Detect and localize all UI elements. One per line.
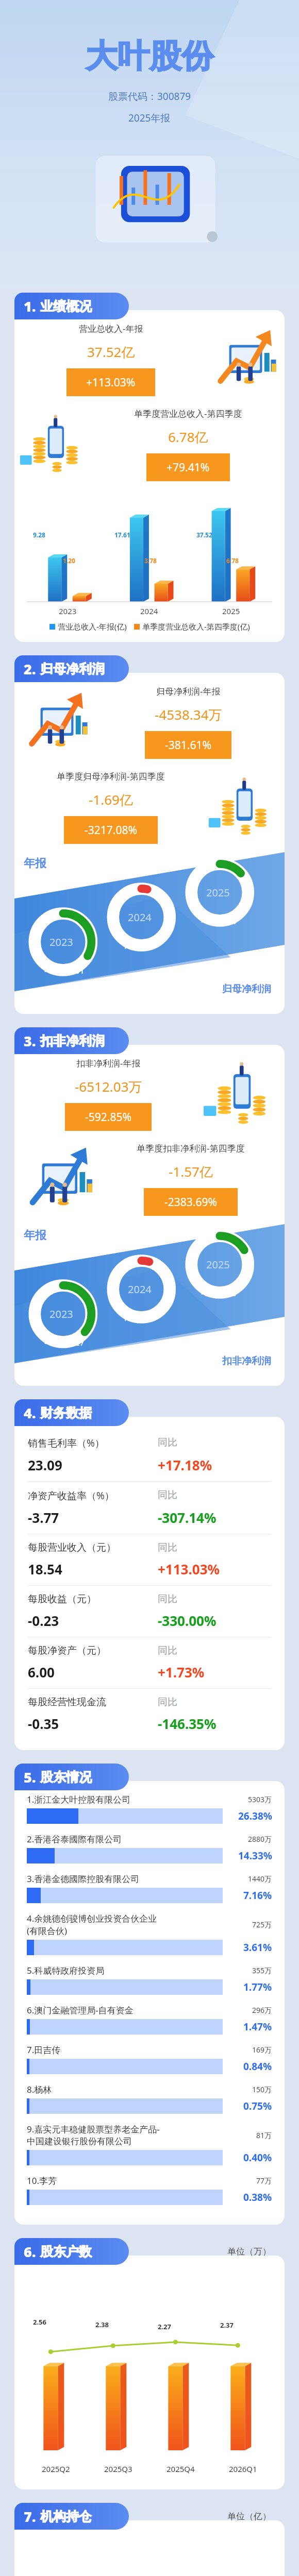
staticText: 7. <box>24 2507 36 2526</box>
staticText: 同比 <box>158 1436 177 1449</box>
staticText: 355万 <box>252 1965 272 1975</box>
button[interactable]: 4.余姚德创骏博创业投资合伙企业 (有限合伙) <box>14 1912 285 1964</box>
staticText: 1.77% <box>243 1980 272 1994</box>
staticText: -16170.27 <box>44 1336 85 1348</box>
staticText: 单位（万） <box>227 2246 271 2257</box>
staticText: 1. <box>24 297 36 316</box>
button[interactable]: 2.香港谷泰國際有限公司 <box>14 1833 285 1873</box>
staticText: 2023 <box>49 1307 73 1321</box>
staticText: 1611.52 <box>123 940 155 952</box>
staticText: 扣非净利润-年报 <box>76 1057 141 1069</box>
staticText: 归母净利润-年报 <box>156 685 221 697</box>
staticText: 150万 <box>252 2084 272 2094</box>
button[interactable]: 3.香港金德國際控股有限公司 <box>14 1873 285 1912</box>
button[interactable]: 3. <box>14 1027 129 1054</box>
button[interactable]: 2. <box>14 655 129 682</box>
staticText: +79.41% <box>167 460 210 475</box>
staticText: 5. <box>24 1768 36 1787</box>
staticText: 1.20 <box>63 556 75 565</box>
staticText: 同比 <box>158 1593 177 1605</box>
staticText: 3.香港金德國際控股有限公司 <box>27 1873 140 1885</box>
staticText: 2026Q1 <box>229 2464 257 2474</box>
button[interactable]: +79.41% <box>146 453 230 481</box>
staticText: 营业总收入-年报 <box>79 323 143 334</box>
staticText: 77万 <box>256 2176 272 2185</box>
button[interactable]: 9.嘉实元丰稳健股票型养老金产品- 中国建设银行股份有限公司 <box>14 2123 285 2175</box>
staticText: +17.18% <box>158 1456 212 1474</box>
button[interactable]: 5. <box>14 1764 129 1790</box>
staticText: 8.杨林 <box>27 2083 52 2095</box>
staticText: 2880万 <box>248 1834 272 1844</box>
staticText: 同比 <box>158 1489 177 1501</box>
staticText: 净资产收益率（%） <box>28 1489 114 1502</box>
staticText: 4.余姚德创骏博创业投资合伙企业 (有限合伙) <box>27 1912 157 1937</box>
staticText: 单季度营业总收入-第四季度 <box>134 408 242 419</box>
button[interactable]: 销售毛利率（%） <box>14 1429 285 1482</box>
staticText: 单位（亿） <box>227 2511 271 2522</box>
staticText: 1.47% <box>243 2020 272 2033</box>
staticText: 6.78亿 <box>168 428 208 446</box>
button[interactable]: 每股经营性现金流 <box>14 1689 285 1740</box>
staticText: -3217.08% <box>85 823 137 838</box>
staticText: 6.澳门金融管理局-自有资金 <box>27 2004 134 2016</box>
button[interactable]: -3217.08% <box>64 816 158 844</box>
staticText: 单季度营业总收入-第四季度(亿) <box>142 621 250 632</box>
button[interactable]: -381.61% <box>145 731 231 759</box>
staticText: -592.85% <box>85 1110 131 1125</box>
staticText: 每股经营性现金流 <box>28 1696 106 1708</box>
staticText: 2025年报 <box>128 111 171 125</box>
staticText: 296万 <box>252 2005 272 2015</box>
staticText: 归母净利润 <box>40 661 105 677</box>
staticText: 年报 <box>24 856 46 871</box>
button[interactable]: 6.澳门金融管理局-自有资金 <box>14 2004 285 2044</box>
staticText: -4538.34 <box>201 915 237 927</box>
staticText: -1.57亿 <box>169 1162 213 1181</box>
staticText: 3.61% <box>243 1941 272 1954</box>
staticText: 大叶股份 <box>86 36 213 76</box>
staticText: -4538.34万 <box>155 705 222 724</box>
staticText: 0.75% <box>243 2099 272 2113</box>
staticText: 扣非净利润 <box>222 1355 271 1367</box>
staticText: 2.27 <box>158 2322 171 2331</box>
button[interactable]: 每股营业收入（元） <box>14 1534 285 1586</box>
button[interactable]: -592.85% <box>65 1103 152 1131</box>
staticText: 扣非净利润 <box>40 1033 105 1049</box>
staticText: 37.52 <box>196 531 212 539</box>
button[interactable]: 6. <box>14 2238 129 2265</box>
staticText: 2025 <box>206 1258 230 1272</box>
staticText: 同比 <box>158 1696 177 1708</box>
button[interactable]: 每股收益（元） <box>14 1586 285 1637</box>
staticText: -17487.01 <box>44 964 85 976</box>
button[interactable]: +113.03% <box>67 368 155 396</box>
button[interactable]: 净资产收益率（%） <box>14 1482 285 1534</box>
button[interactable]: 1.浙江金大叶控股有限公司 <box>14 1793 285 1833</box>
button[interactable]: -2383.69% <box>144 1188 238 1216</box>
button[interactable]: 7.田吉传 <box>14 2044 285 2083</box>
staticText: -3.77 <box>28 1509 59 1527</box>
staticText: 725万 <box>252 1920 272 1929</box>
staticText: 5.科威特政府投资局 <box>27 1964 105 1976</box>
staticText: 2.38 <box>95 2320 109 2329</box>
button[interactable]: 7. <box>14 2503 129 2530</box>
staticText: 5303万 <box>248 1794 272 1804</box>
staticText: 2025 <box>206 886 230 900</box>
button[interactable]: 10.李芳 <box>14 2175 285 2214</box>
button[interactable]: 8.杨林 <box>14 2083 285 2123</box>
button[interactable]: 每股净资产（元） <box>14 1637 285 1689</box>
button[interactable]: 1. <box>14 293 129 319</box>
staticText: 6.00 <box>28 1663 55 1681</box>
staticText: 0.40% <box>243 2151 272 2164</box>
staticText: 9.嘉实元丰稳健股票型养老金产品- 中国建设银行股份有限公司 <box>27 2123 160 2147</box>
staticText: -0.35 <box>28 1715 59 1733</box>
button[interactable]: 4. <box>14 1399 129 1426</box>
staticText: 单季度归母净利润-第四季度 <box>57 770 165 782</box>
staticText: 37.52亿 <box>87 343 135 361</box>
staticText: 3. <box>24 1031 36 1050</box>
staticText: 2.香港谷泰國際有限公司 <box>27 1833 122 1845</box>
staticText: 14.33% <box>238 1849 272 1862</box>
staticText: 1.浙江金大叶控股有限公司 <box>27 1793 131 1805</box>
staticText: 同比 <box>158 1541 177 1554</box>
button[interactable]: 5.科威特政府投资局 <box>14 1964 285 2004</box>
staticText: 2023 <box>59 606 77 616</box>
staticText: +113.03% <box>86 375 136 390</box>
